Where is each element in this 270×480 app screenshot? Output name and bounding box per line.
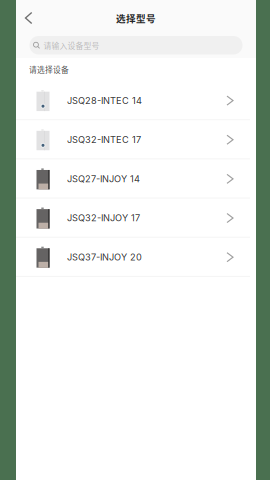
staticText: 请选择设备: [29, 64, 69, 75]
button[interactable]: JSQ37-INJOY 20: [16, 238, 256, 277]
button[interactable]: Back: [16, 5, 40, 30]
staticText: JSQ37-INJOY 20: [67, 252, 142, 263]
button[interactable]: JSQ28-INTEC 14: [16, 81, 256, 120]
staticText: 选择型号: [116, 11, 156, 25]
staticText: JSQ28-INTEC 14: [67, 95, 142, 106]
staticText: JSQ27-INJOY 14: [67, 173, 140, 184]
staticText: JSQ32-INJOY 17: [67, 212, 140, 224]
button[interactable]: JSQ27-INJOY 14: [16, 159, 256, 198]
button[interactable]: JSQ32-INJOY 17: [16, 198, 256, 237]
staticText: JSQ32-INTEC 17: [67, 134, 141, 145]
button[interactable]: JSQ32-INTEC 17: [16, 120, 256, 159]
staticText: 请输入设备型号: [43, 40, 99, 51]
